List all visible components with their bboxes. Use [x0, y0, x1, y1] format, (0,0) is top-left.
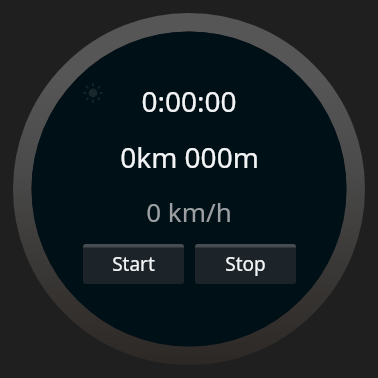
button[interactable]: Stop	[195, 244, 296, 284]
button[interactable]: GPS status	[82, 82, 104, 104]
staticText: 0km 000m	[120, 138, 259, 176]
staticText: 0:00:00	[141, 82, 237, 120]
staticText: Start	[112, 251, 155, 277]
staticText: 0 km/h	[146, 194, 232, 229]
staticText: Stop	[225, 251, 266, 277]
button[interactable]: Start	[83, 244, 184, 284]
